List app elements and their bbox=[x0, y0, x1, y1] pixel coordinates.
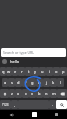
button[interactable]: d bbox=[15, 78, 22, 87]
button[interactable]: Home bbox=[23, 110, 45, 119]
staticText: x bbox=[17, 91, 20, 96]
button[interactable]: Search or type URL bbox=[1, 48, 66, 57]
button[interactable]: i bbox=[46, 67, 53, 76]
staticText: Search or type URL bbox=[3, 50, 35, 55]
button[interactable]: o bbox=[53, 67, 60, 76]
staticText: u bbox=[41, 69, 44, 74]
staticText: m bbox=[52, 91, 56, 96]
button[interactable]: . bbox=[49, 100, 56, 109]
staticText: c bbox=[25, 91, 27, 96]
button[interactable]: x bbox=[15, 89, 22, 98]
staticText: w bbox=[7, 69, 11, 74]
button[interactable]: Search bbox=[56, 100, 67, 109]
button[interactable]: n bbox=[43, 89, 50, 98]
button[interactable]: h bbox=[36, 78, 43, 87]
button[interactable]: g bbox=[29, 78, 36, 87]
button[interactable]: a bbox=[2, 78, 8, 87]
staticText: b bbox=[38, 91, 41, 96]
button[interactable]: c bbox=[22, 89, 29, 98]
button[interactable]: r bbox=[18, 67, 25, 76]
staticText: s bbox=[11, 80, 13, 85]
button[interactable]: q bbox=[0, 67, 6, 76]
staticText: a bbox=[4, 80, 7, 85]
button[interactable]: p bbox=[60, 67, 67, 76]
button[interactable]: w bbox=[6, 67, 12, 76]
staticText: r bbox=[21, 69, 23, 74]
button[interactable]: Recent apps bbox=[45, 110, 67, 119]
staticText: k bbox=[52, 80, 55, 85]
staticText: g bbox=[31, 80, 34, 85]
staticText: i bbox=[49, 69, 51, 74]
button[interactable]: s bbox=[8, 78, 15, 87]
staticText: q bbox=[2, 69, 5, 74]
button[interactable]: v bbox=[29, 89, 36, 98]
staticText: t bbox=[28, 69, 30, 74]
staticText: j bbox=[46, 80, 48, 85]
button[interactable]: l bbox=[57, 78, 64, 87]
button[interactable]: Back bbox=[0, 110, 23, 119]
staticText: z bbox=[11, 91, 13, 96]
staticText: p bbox=[62, 69, 65, 74]
button[interactable]: , bbox=[11, 100, 18, 109]
button[interactable]: f bbox=[22, 78, 29, 87]
button[interactable]: u bbox=[39, 67, 46, 76]
button[interactable]: e bbox=[12, 67, 18, 76]
staticText: l bbox=[60, 80, 62, 85]
staticText: f bbox=[25, 80, 27, 85]
button[interactable]: Google bbox=[2, 59, 7, 64]
button[interactable]: b bbox=[36, 89, 43, 98]
staticText: v bbox=[31, 91, 34, 96]
staticText: . bbox=[52, 102, 54, 107]
button[interactable]: z bbox=[9, 89, 15, 98]
button[interactable]: m bbox=[50, 89, 57, 98]
staticText: h bbox=[38, 80, 41, 85]
staticText: y bbox=[34, 69, 37, 74]
staticText: e bbox=[14, 69, 17, 74]
staticText: d bbox=[17, 80, 20, 85]
staticText: ?123 bbox=[2, 103, 9, 107]
button[interactable]: y bbox=[32, 67, 39, 76]
button[interactable]: j bbox=[43, 78, 50, 87]
button[interactable]: k bbox=[50, 78, 57, 87]
button[interactable]: Shift bbox=[0, 89, 9, 98]
staticText: n bbox=[45, 91, 48, 96]
button[interactable]: t bbox=[25, 67, 32, 76]
staticText: o bbox=[55, 69, 58, 74]
button[interactable]: Backspace bbox=[57, 89, 67, 98]
button[interactable]: ?123 bbox=[0, 100, 11, 109]
staticText: hello bbox=[10, 59, 20, 64]
staticText: , bbox=[14, 102, 16, 107]
